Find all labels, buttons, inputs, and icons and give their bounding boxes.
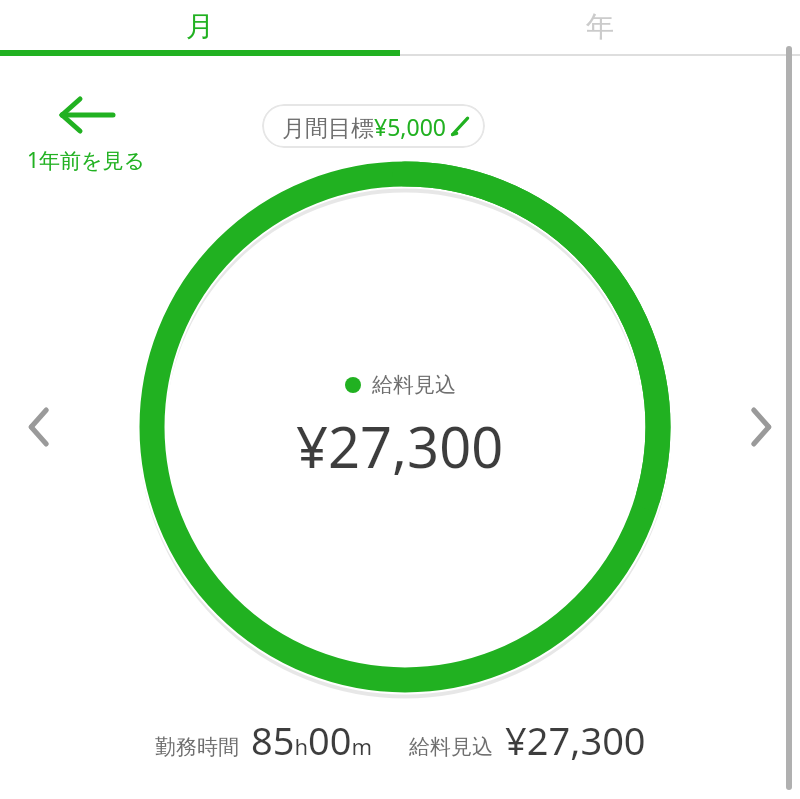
- staticText: 給料見込: [409, 734, 493, 760]
- staticText: 1年前を見る: [27, 146, 145, 175]
- staticText: ¥27,300: [296, 408, 504, 484]
- staticText: 月: [186, 9, 214, 44]
- button[interactable]: 前の月: [8, 392, 70, 462]
- staticText: 月間目標¥5,000: [282, 111, 446, 142]
- staticText: 勤務時間: [155, 734, 239, 760]
- staticText: 給料見込: [372, 372, 456, 398]
- staticText: 85h00m: [251, 714, 373, 766]
- staticText: ¥27,300: [505, 714, 646, 766]
- button[interactable]: 次の月: [730, 392, 792, 462]
- button[interactable]: 月: [0, 0, 400, 52]
- staticText: 年: [586, 9, 614, 44]
- button[interactable]: 月間目標¥5,000: [262, 104, 485, 148]
- button[interactable]: 年: [400, 0, 800, 52]
- button[interactable]: 1年前を見る: [16, 100, 156, 175]
